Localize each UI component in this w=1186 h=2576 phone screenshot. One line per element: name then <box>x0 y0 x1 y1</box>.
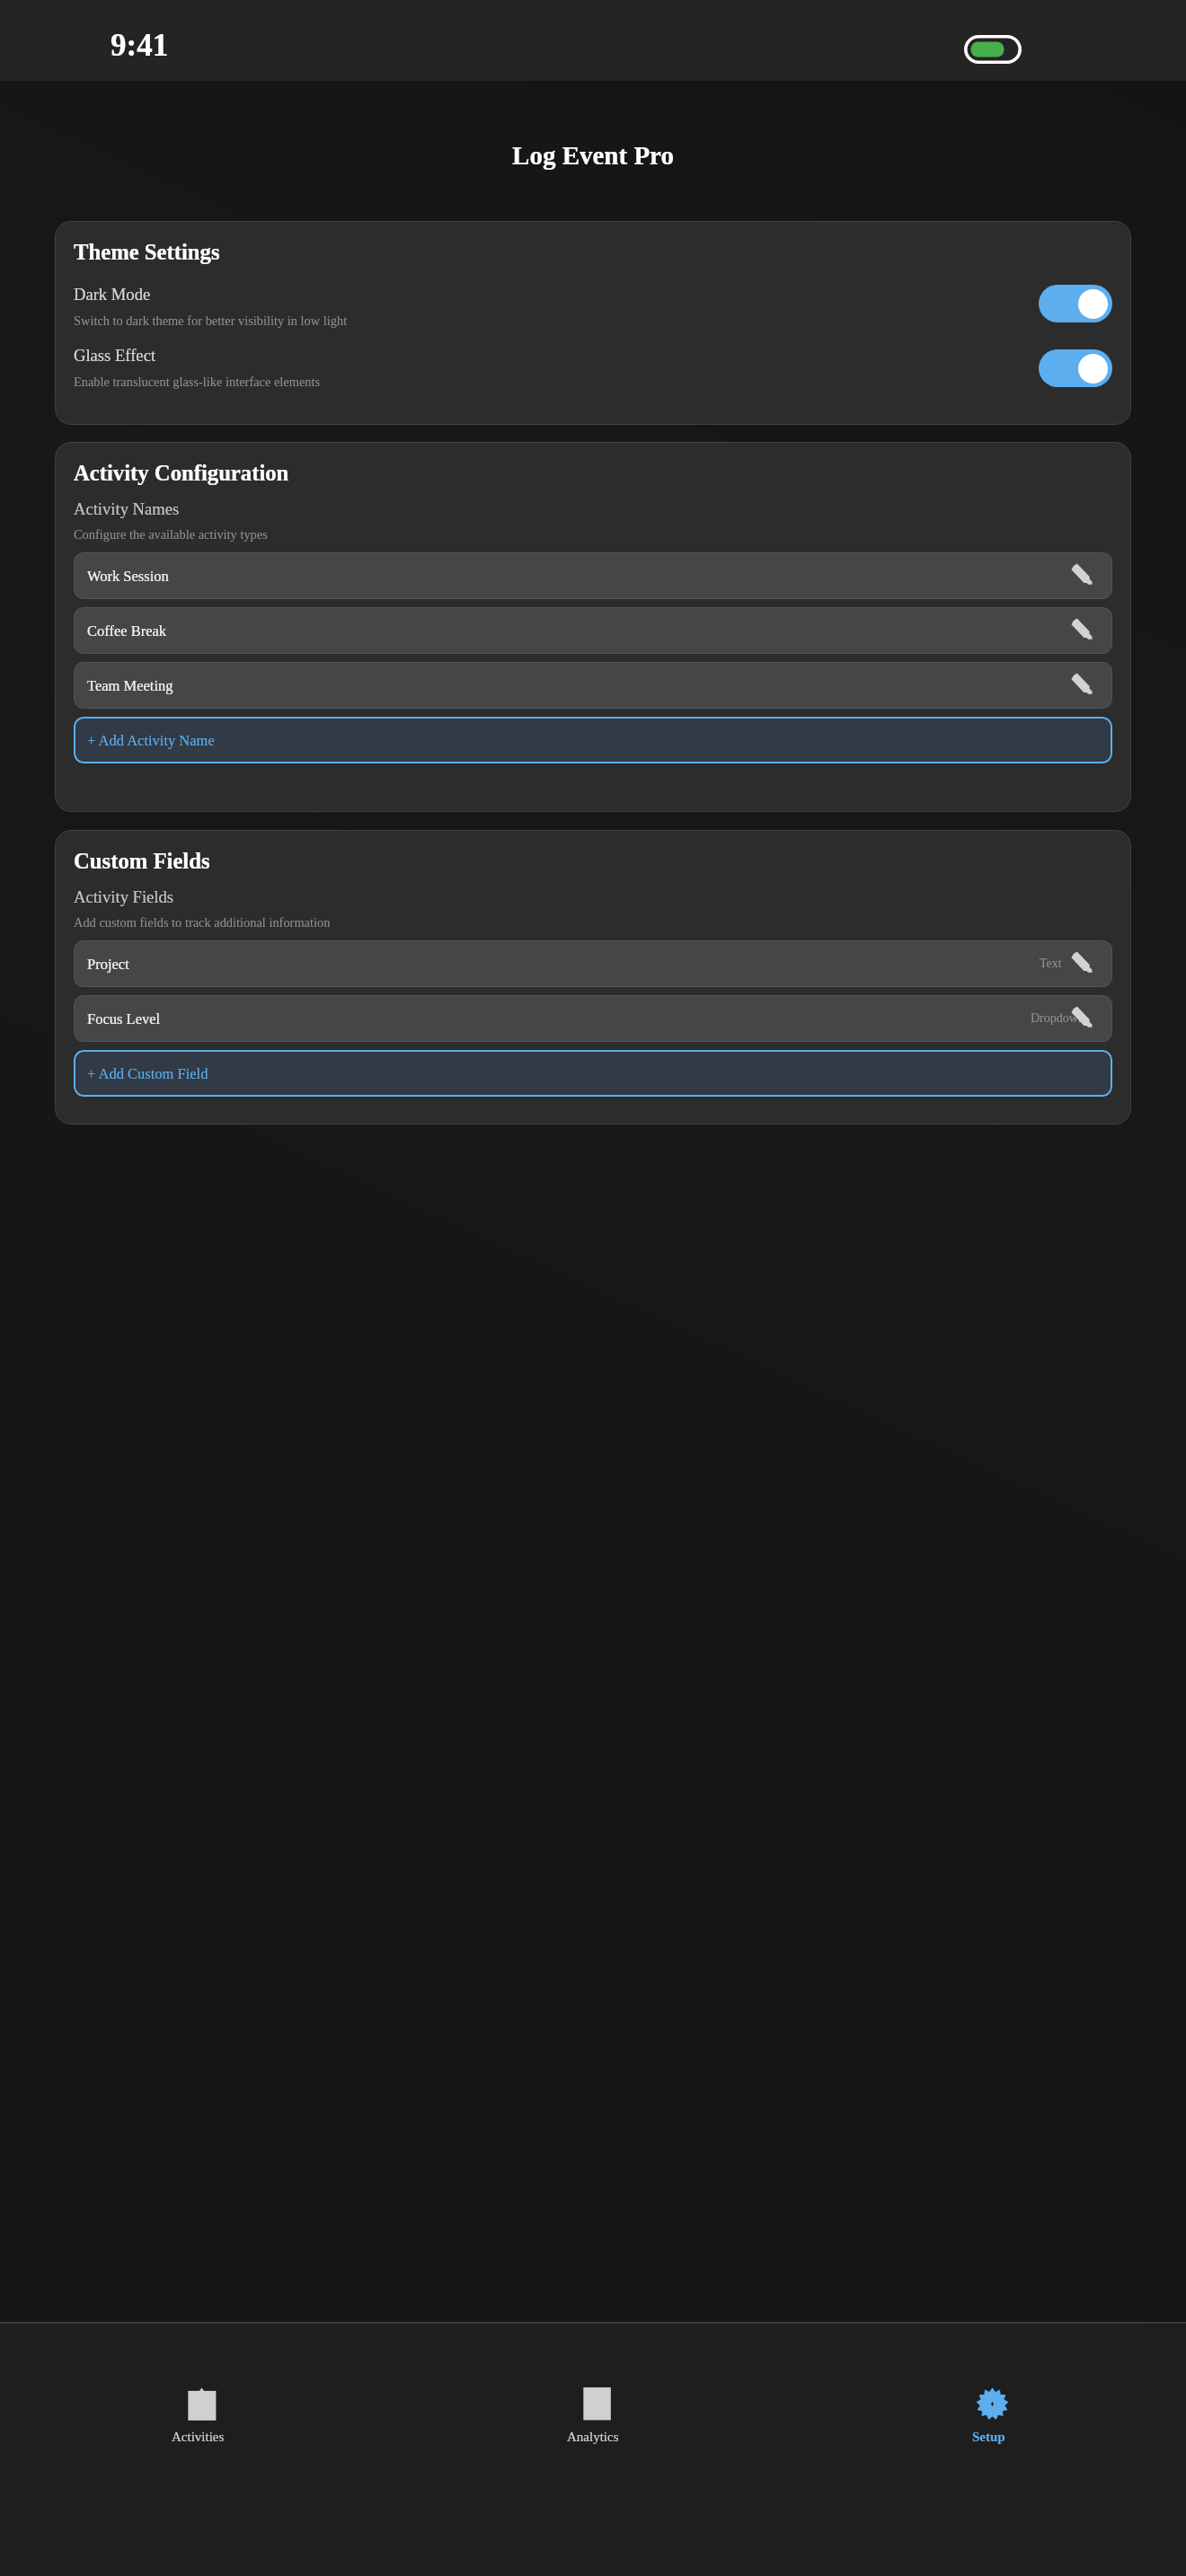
staticText: Analytics <box>567 2430 619 2445</box>
staticText: Activity Configuration <box>74 461 289 485</box>
button[interactable]: + Add Custom Field <box>74 1050 1112 1097</box>
staticText: Theme Settings <box>74 240 220 264</box>
button[interactable]: Glass Effect <box>74 346 1112 389</box>
button[interactable]: Analytics <box>395 2324 791 2576</box>
button[interactable]: Project <box>74 940 1112 987</box>
button[interactable]: Dark Mode <box>1039 285 1112 322</box>
staticText: 9:41 <box>111 28 169 63</box>
staticText: + Add Activity Name <box>87 732 215 748</box>
staticText: Project <box>87 956 129 972</box>
staticText: Activity Names <box>74 499 180 518</box>
other: Edit <box>1071 563 1093 585</box>
staticText: Activities <box>172 2430 225 2445</box>
staticText: Switch to dark theme for better visibili… <box>74 313 348 328</box>
staticText: Coffee Break <box>87 622 167 639</box>
staticText: Log Event Pro <box>0 141 1186 170</box>
staticText: Dark Mode <box>74 285 151 304</box>
button[interactable]: + Add Activity Name <box>74 717 1112 763</box>
staticText: Configure the available activity types <box>74 527 268 542</box>
staticText: Custom Fields <box>74 849 210 873</box>
other: Edit <box>1071 673 1093 694</box>
button[interactable]: Work Session <box>74 552 1112 599</box>
button[interactable]: Glass Effect <box>1039 349 1112 387</box>
staticText: Work Session <box>87 568 169 584</box>
other: Edit <box>1071 951 1093 973</box>
button[interactable]: Team Meeting <box>74 662 1112 709</box>
staticText: Focus Level <box>87 1010 161 1027</box>
staticText: Dropdown <box>1031 1011 1084 1026</box>
button[interactable]: Dark Mode <box>74 285 1112 328</box>
button[interactable]: Focus Level <box>74 995 1112 1042</box>
other: Edit <box>1071 1006 1093 1028</box>
staticText: Enable translucent glass-like interface … <box>74 375 321 389</box>
staticText: Glass Effect <box>74 346 156 365</box>
other: Edit <box>1071 618 1093 640</box>
button[interactable]: Setup <box>791 2324 1186 2576</box>
staticText: Setup <box>972 2430 1005 2445</box>
button[interactable]: Coffee Break <box>74 607 1112 654</box>
staticText: Text <box>1040 957 1062 971</box>
button[interactable]: Activities <box>0 2324 395 2576</box>
staticText: Team Meeting <box>87 677 173 693</box>
staticText: Activity Fields <box>74 887 174 906</box>
staticText: + Add Custom Field <box>87 1065 208 1081</box>
staticText: Add custom fields to track additional in… <box>74 915 331 930</box>
